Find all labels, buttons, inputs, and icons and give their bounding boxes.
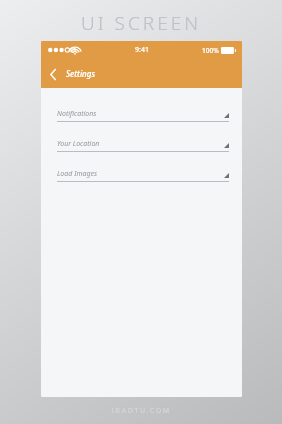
button[interactable]: Notifications: [57, 101, 229, 122]
button[interactable]: Your Location: [57, 131, 229, 152]
button[interactable]: Load Images: [57, 161, 229, 182]
staticText: 9:41: [135, 45, 149, 55]
staticText: Notifications: [57, 109, 97, 119]
staticText: UI SCREEN: [0, 10, 282, 36]
staticText: Your Location: [57, 139, 100, 149]
staticText: IBAOTU.COM: [0, 406, 282, 416]
staticText: Settings: [66, 68, 95, 79]
button[interactable]: Back: [44, 65, 62, 83]
staticText: Load Images: [57, 169, 98, 179]
staticText: 100%: [202, 46, 219, 55]
